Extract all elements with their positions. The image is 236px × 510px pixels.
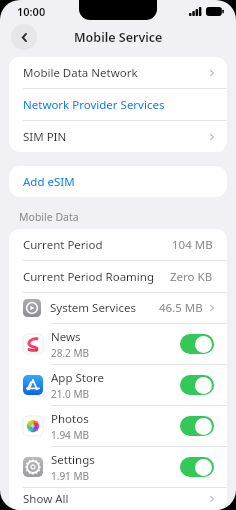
button[interactable]: Mobile Data Network [9,57,227,88]
button[interactable]: System Services [9,293,227,323]
staticText: 1.94 MB [51,428,90,442]
button[interactable]: SIM PIN [9,121,227,152]
button[interactable]: Current Period [9,229,227,260]
staticText: 21.0 MB [51,387,90,401]
staticText: 10:00 [17,4,46,19]
button[interactable]: Network Provider Services [9,89,227,120]
staticText: 104 MB [172,237,213,253]
staticText: Network Provider Services [23,97,165,113]
button[interactable]: Add eSIM [9,166,227,197]
staticText: Mobile Data Network [23,65,138,81]
button[interactable]: Toggle on [180,375,214,395]
staticText: News [51,329,81,345]
button[interactable]: Current Period Roaming [9,261,227,292]
staticText: Settings [51,452,95,468]
staticText: 28.2 MB [51,346,90,360]
button[interactable]: Show All [9,488,227,510]
staticText: Zero KB [170,269,213,285]
button[interactable]: Photos [9,406,227,446]
staticText: Photos [51,411,89,427]
button[interactable]: Toggle on [180,334,214,354]
button[interactable]: App Store [9,365,227,405]
staticText: 1.91 MB [51,469,90,483]
staticText: SIM PIN [23,129,67,145]
staticText: Current Period [23,237,103,253]
button[interactable]: Settings [9,447,227,487]
staticText: Add eSIM [23,174,75,190]
staticText: Current Period Roaming [23,269,155,285]
staticText: Show All [23,491,69,507]
button[interactable]: Toggle on [180,416,214,436]
staticText: Mobile Data [19,210,79,224]
button[interactable]: News [9,324,227,364]
staticText: System Services [50,300,136,316]
button[interactable]: Back [11,24,37,50]
staticText: 46.5 MB [159,300,203,316]
button[interactable]: Toggle on [180,457,214,477]
staticText: Mobile Service [74,29,163,46]
staticText: App Store [51,370,104,386]
